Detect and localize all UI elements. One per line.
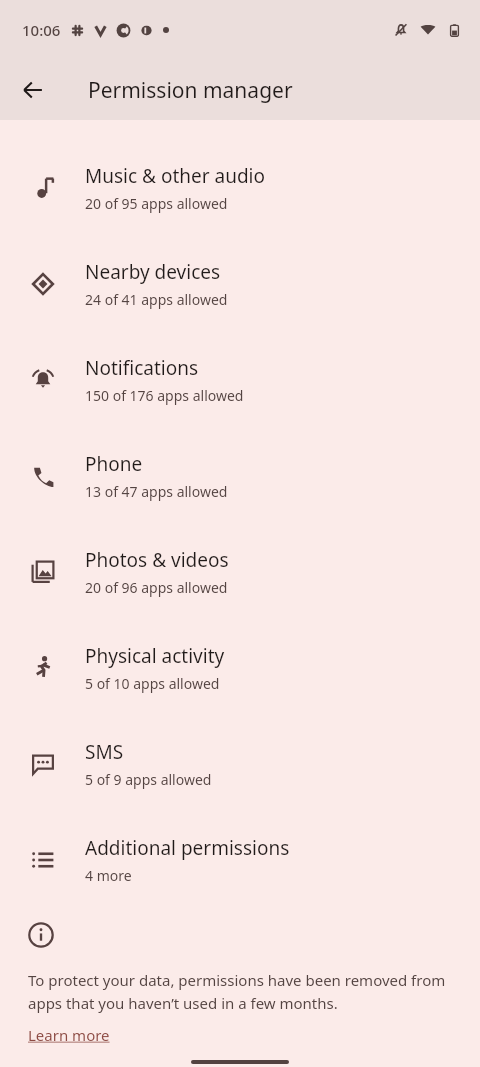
- button[interactable]: Nearby devices: [0, 236, 480, 332]
- staticText: To protect your data, permissions have b…: [28, 970, 450, 1013]
- staticText: 10:06: [22, 20, 61, 40]
- staticText: Learn more: [28, 1025, 110, 1045]
- button[interactable]: SMS: [0, 716, 480, 812]
- staticText: Nearby devices: [85, 259, 221, 285]
- button[interactable]: Back: [9, 66, 57, 114]
- button[interactable]: Music & other audio: [0, 140, 480, 236]
- staticText: 20 of 96 apps allowed: [85, 578, 228, 597]
- staticText: 4 more: [85, 866, 132, 885]
- staticText: 20 of 95 apps allowed: [85, 194, 228, 213]
- button[interactable]: Physical activity: [0, 620, 480, 716]
- button[interactable]: Photos & videos: [0, 524, 480, 620]
- staticText: Phone: [85, 451, 143, 477]
- staticText: Physical activity: [85, 643, 225, 669]
- staticText: 24 of 41 apps allowed: [85, 290, 228, 309]
- staticText: 13 of 47 apps allowed: [85, 482, 228, 501]
- staticText: Additional permissions: [85, 835, 290, 861]
- staticText: 150 of 176 apps allowed: [85, 386, 244, 405]
- staticText: Notifications: [85, 355, 199, 381]
- staticText: Music & other audio: [85, 163, 265, 189]
- button[interactable]: Phone: [0, 428, 480, 524]
- button[interactable]: Additional permissions: [0, 812, 480, 908]
- staticText: Photos & videos: [85, 547, 229, 573]
- staticText: 5 of 9 apps allowed: [85, 770, 212, 789]
- staticText: 5 of 10 apps allowed: [85, 674, 220, 693]
- button[interactable]: Learn more: [28, 1025, 110, 1045]
- staticText: SMS: [85, 739, 124, 765]
- button[interactable]: Notifications: [0, 332, 480, 428]
- staticText: Permission manager: [88, 76, 293, 105]
